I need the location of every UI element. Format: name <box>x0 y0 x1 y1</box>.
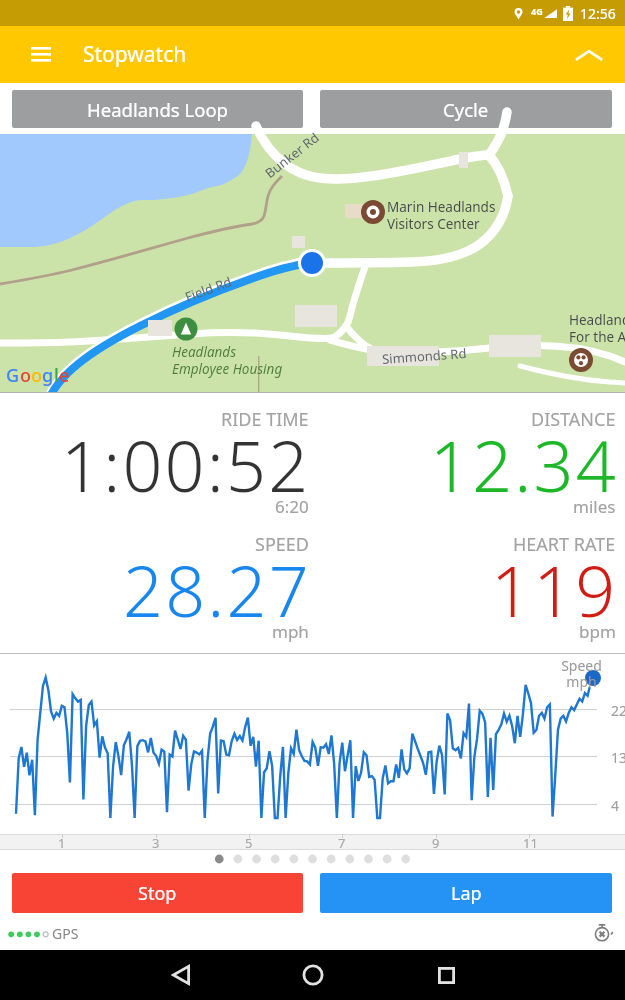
button[interactable]: Back <box>157 951 205 999</box>
staticText: 7 <box>338 834 346 850</box>
staticText: Headlands Employee Housing <box>172 343 283 378</box>
staticText: DISTANCE <box>531 407 616 432</box>
staticText: RIDE TIME <box>221 407 309 432</box>
staticText: g <box>42 363 54 388</box>
button[interactable]: Cycle <box>320 90 612 128</box>
staticText: o <box>20 363 31 388</box>
staticText: Field Rd <box>182 272 235 306</box>
button[interactable]: Lap <box>320 873 612 913</box>
staticText: 9 <box>432 834 440 850</box>
staticText: 11 <box>523 834 538 850</box>
staticText: Bunker Rd <box>261 128 323 182</box>
staticText: bpm <box>579 620 616 643</box>
button[interactable]: RIDE TIME <box>0 393 312 523</box>
staticText: GPS <box>52 924 79 943</box>
staticText: Headland For the Ar <box>569 311 625 346</box>
staticText: Stop <box>138 881 177 906</box>
button[interactable]: Recent apps <box>422 951 470 999</box>
staticText: mph <box>272 620 309 643</box>
staticText: 6:20 <box>275 495 309 518</box>
button[interactable]: Reset stopwatch <box>588 918 616 946</box>
staticText: Stopwatch <box>83 40 187 69</box>
staticText: 1:00:52 <box>61 417 311 512</box>
staticText: miles <box>573 495 616 518</box>
staticText: 12:56 <box>580 4 616 23</box>
staticText: 22 <box>611 701 625 720</box>
staticText: Headlands Loop <box>87 97 228 122</box>
staticText: o <box>31 363 42 388</box>
button[interactable]: DISTANCE <box>312 393 625 523</box>
staticText: SPEED <box>255 532 309 557</box>
staticText: l <box>54 363 59 388</box>
staticText: 119 <box>491 542 618 637</box>
staticText: e <box>59 363 70 388</box>
button[interactable]: Headlands Loop <box>12 90 303 128</box>
button[interactable]: SPEED <box>0 523 312 653</box>
staticText: Speed mph <box>561 656 602 691</box>
staticText: HEART RATE <box>513 532 616 557</box>
button[interactable]: Collapse <box>565 31 613 79</box>
staticText: 4G <box>531 5 543 17</box>
button[interactable]: Open navigation menu <box>17 31 65 79</box>
staticText: 5 <box>245 834 253 850</box>
button[interactable]: Home <box>289 951 337 999</box>
staticText: 1 <box>58 834 66 850</box>
staticText: 4 <box>611 796 620 815</box>
staticText: 28.27 <box>123 542 311 637</box>
staticText: Lap <box>451 881 482 906</box>
staticText: Marin Headlands Visitors Center <box>387 198 496 233</box>
button[interactable]: HEART RATE <box>312 523 625 653</box>
staticText: 13 <box>611 748 625 767</box>
button[interactable]: Stop <box>12 873 303 913</box>
staticText: G <box>6 363 20 388</box>
staticText: Simmonds Rd <box>381 344 467 368</box>
staticText: Cycle <box>443 97 489 122</box>
staticText: 3 <box>152 834 160 850</box>
staticText: 12.34 <box>430 417 618 512</box>
